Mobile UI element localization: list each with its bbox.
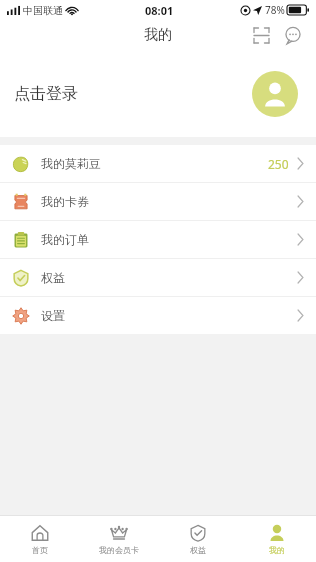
staticText: 78% [265, 3, 285, 17]
staticText: 我的 [269, 545, 285, 555]
button[interactable]: Avatar [252, 71, 298, 117]
staticText: 我的莫莉豆 [41, 156, 101, 171]
button[interactable]: 权益 [0, 259, 316, 296]
button[interactable]: More [280, 22, 306, 48]
button[interactable]: Scan [248, 22, 274, 48]
button[interactable]: 我的 [237, 516, 316, 562]
button[interactable]: 首页 [0, 516, 79, 562]
button[interactable]: 权益 [158, 516, 237, 562]
staticText: 权益 [190, 545, 206, 555]
button[interactable]: 设置 [0, 297, 316, 334]
staticText: 我的订单 [41, 232, 89, 247]
staticText: 设置 [41, 308, 65, 323]
staticText: 08:01 [145, 3, 174, 18]
staticText: 我的会员卡 [99, 545, 139, 555]
button[interactable]: 点击登录 [14, 84, 78, 104]
button[interactable]: 我的莫莉豆 [0, 145, 316, 182]
button[interactable]: 我的订单 [0, 221, 316, 258]
staticText: 点击登录 [14, 84, 78, 104]
staticText: 权益 [41, 270, 65, 285]
button[interactable]: 我的会员卡 [79, 516, 158, 562]
staticText: 我的卡券 [41, 194, 89, 209]
staticText: 首页 [32, 545, 48, 555]
staticText: 250 [268, 156, 289, 172]
staticText: 我的 [144, 26, 172, 44]
button[interactable]: 我的卡券 [0, 183, 316, 220]
staticText: 中国联通 [23, 4, 63, 17]
